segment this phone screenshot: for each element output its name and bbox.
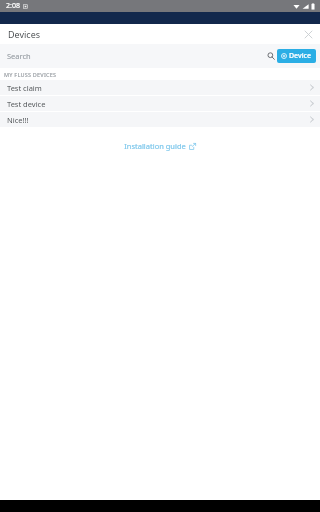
- button[interactable]: Nice!!!: [0, 112, 320, 127]
- button[interactable]: Installation guide: [120, 139, 200, 153]
- button[interactable]: Test device: [0, 96, 320, 111]
- button[interactable]: Close: [301, 27, 315, 41]
- staticText: Search: [7, 51, 31, 61]
- staticText: Test claim: [7, 83, 42, 93]
- staticText: Test device: [7, 99, 46, 109]
- staticText: Installation guide: [124, 141, 186, 151]
- staticText: 2:08: [6, 1, 20, 11]
- staticText: Devices: [8, 28, 41, 40]
- button[interactable]: Search: [264, 49, 278, 63]
- button[interactable]: Test claim: [0, 80, 320, 95]
- staticText: MY FLUSS DEVICES: [4, 71, 57, 78]
- staticText: Device: [289, 51, 312, 61]
- staticText: Nice!!!: [7, 115, 29, 125]
- button[interactable]: Device: [277, 49, 316, 63]
